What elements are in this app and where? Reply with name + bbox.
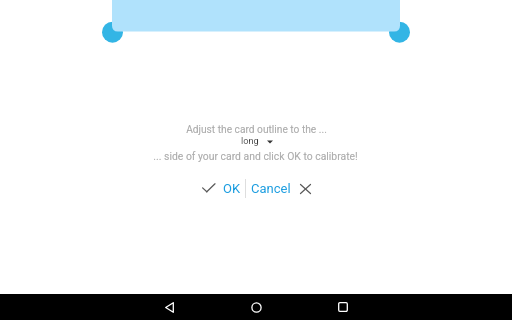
button[interactable]: OK — [202, 179, 241, 198]
button[interactable]: Drag left card corner — [102, 21, 123, 42]
button[interactable]: long — [241, 135, 273, 146]
button[interactable]: Drag right card corner — [389, 21, 410, 42]
staticText: Cancel — [251, 181, 291, 196]
button[interactable]: Cancel — [251, 181, 311, 196]
button[interactable]: Back — [148, 294, 191, 320]
staticText: Adjust the card outline to the ... — [186, 124, 327, 136]
button[interactable]: Recent apps — [321, 294, 364, 320]
staticText: OK — [223, 181, 241, 196]
button[interactable]: Home — [235, 294, 278, 320]
staticText: ... side of your card and click OK to ca… — [153, 150, 358, 162]
staticText: long — [241, 135, 259, 146]
